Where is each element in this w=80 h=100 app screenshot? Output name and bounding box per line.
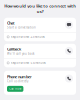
staticText: Callback [7,46,21,52]
staticText: We'll call you back [7,52,34,55]
button[interactable]: Phone number [4,71,76,95]
staticText: Start a conversation [7,26,36,29]
staticText: Phone number [7,74,32,79]
staticText: Call now [9,87,21,91]
button[interactable]: Callback [4,44,76,67]
staticText: Response time: 5-10 minutes [11,61,46,65]
staticText: Call us directly [7,79,28,83]
button[interactable]: Chat [4,18,76,41]
staticText: Response time: 2-3 minutes [11,35,45,39]
staticText: How would you like to connect with us? [4,3,76,14]
staticText: Chat [7,20,15,26]
